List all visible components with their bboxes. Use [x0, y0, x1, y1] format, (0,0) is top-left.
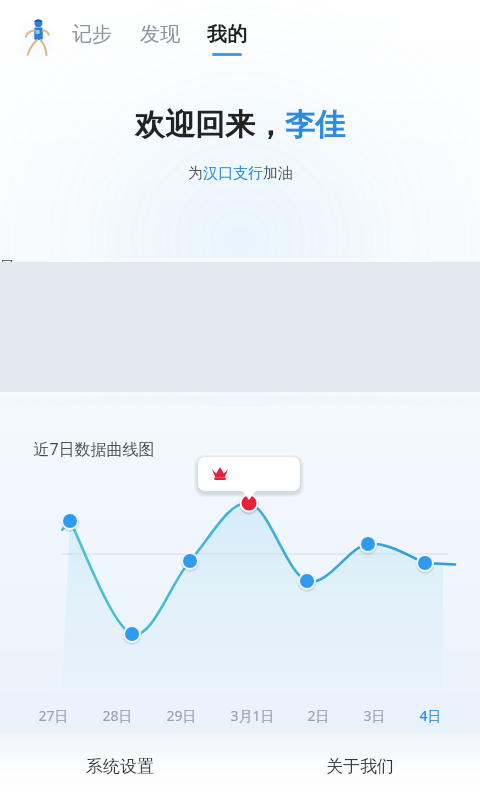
staticText: 28日: [102, 706, 133, 725]
staticText: 发现: [140, 22, 180, 47]
staticText: 3日: [363, 706, 386, 725]
staticText: 关于我们: [326, 756, 394, 777]
button[interactable]: 我的: [205, 22, 249, 56]
staticText: 近7日数据曲线图: [33, 438, 155, 460]
button[interactable]: 系统设置: [0, 733, 240, 800]
staticText: 系统设置: [86, 756, 154, 777]
staticText: 记步: [72, 22, 112, 47]
button[interactable]: 关于我们: [240, 733, 480, 800]
staticText: 我的: [207, 22, 247, 47]
staticText: 2日: [307, 706, 330, 725]
staticText: 为汉口支行加油: [188, 164, 293, 183]
staticText: 4日: [419, 706, 442, 725]
staticText: 29日: [166, 706, 197, 725]
button[interactable]: 发现: [138, 22, 182, 56]
staticText: 欢迎回来，李佳: [135, 106, 345, 144]
staticText: 27日: [38, 706, 69, 725]
staticText: 3月1日: [230, 706, 275, 725]
other: App logo: [14, 16, 60, 62]
button[interactable]: 记步: [70, 22, 114, 56]
